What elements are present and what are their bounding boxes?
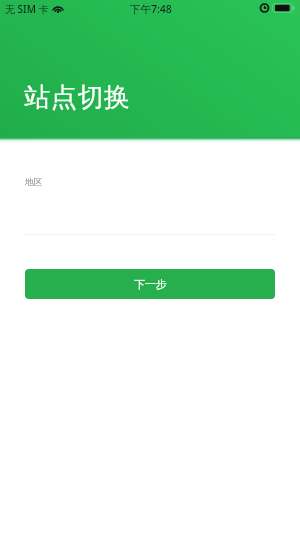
other: Battery full <box>272 3 295 13</box>
other: Alarm set <box>260 4 269 12</box>
other: Wi-Fi <box>52 4 64 13</box>
staticText: 下午7:48 <box>130 2 172 16</box>
button[interactable]: 下一步 <box>25 269 275 299</box>
staticText: 无 SIM 卡 <box>5 2 49 16</box>
staticText: 下一步 <box>134 277 167 291</box>
button[interactable]: 地区 <box>24 168 275 235</box>
staticText: 地区 <box>25 177 43 188</box>
staticText: 站点切换 <box>24 81 131 114</box>
